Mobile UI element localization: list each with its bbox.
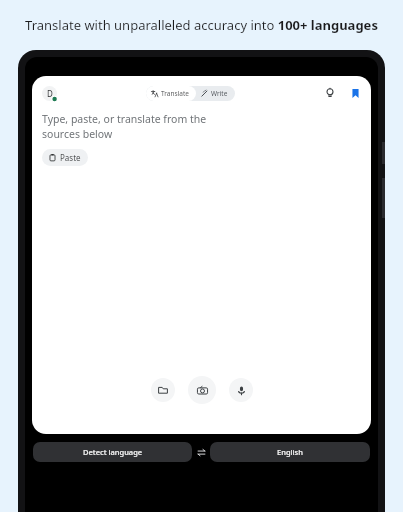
button[interactable]: Tips — [323, 86, 337, 100]
button[interactable]: Swap languages — [192, 442, 210, 462]
staticText: Write — [211, 89, 228, 98]
button[interactable]: Translate — [146, 86, 196, 101]
button[interactable]: Account — [41, 85, 58, 102]
staticText: Translate with unparalleled accuracy int… — [25, 16, 378, 34]
staticText: Translate — [161, 89, 189, 98]
button[interactable]: Write — [196, 86, 235, 101]
button[interactable]: Detect language — [33, 442, 192, 462]
staticText: D — [47, 88, 53, 99]
staticText: Paste — [60, 152, 81, 163]
button[interactable]: English — [210, 442, 370, 462]
button[interactable]: Saved — [348, 86, 362, 100]
button[interactable]: Microphone — [229, 378, 253, 402]
staticText: Detect language — [83, 447, 143, 457]
button[interactable]: Camera — [188, 376, 216, 404]
button[interactable]: Gallery — [151, 378, 175, 402]
staticText: English — [277, 447, 303, 457]
button[interactable]: Paste — [42, 149, 88, 166]
staticText: Type, paste, or translate from the sourc… — [42, 112, 207, 141]
